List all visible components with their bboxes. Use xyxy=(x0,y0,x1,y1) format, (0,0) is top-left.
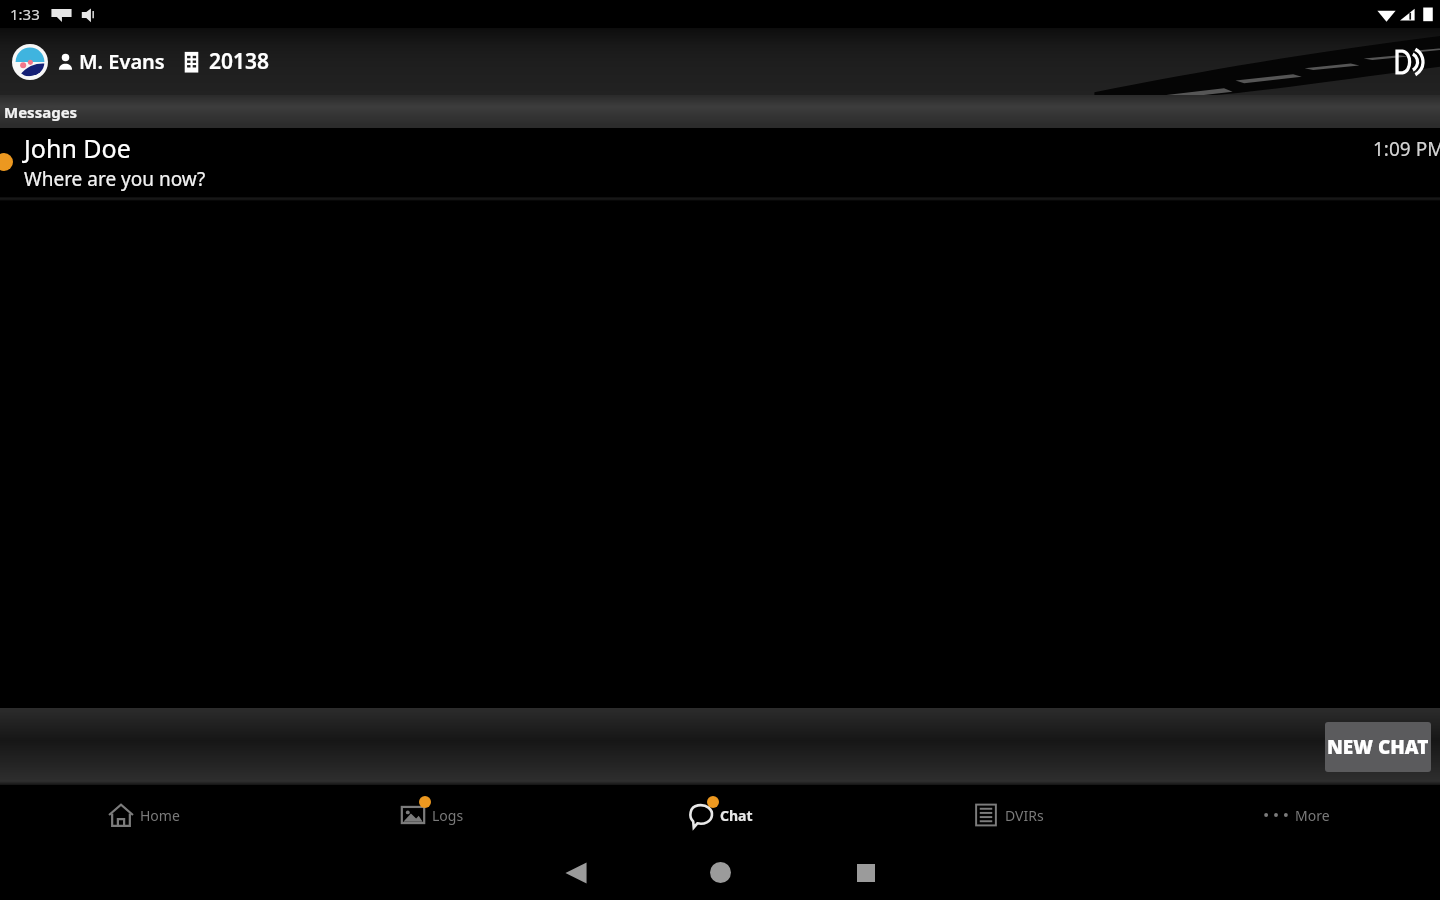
staticText: NEW CHAT xyxy=(1327,734,1429,760)
staticText: DVIRs xyxy=(1005,806,1044,825)
staticText: Chat xyxy=(720,806,753,825)
staticText: Where are you now? xyxy=(24,166,206,192)
staticText: Logs xyxy=(432,806,464,825)
staticText: 1:09 PM xyxy=(1373,136,1440,162)
button[interactable]: M. Evans xyxy=(0,28,282,95)
staticText: 1:33 xyxy=(10,4,40,24)
staticText: Home xyxy=(140,806,180,825)
button[interactable]: Broadcast xyxy=(1390,40,1434,84)
button[interactable]: John Doe xyxy=(0,128,1440,201)
button[interactable]: Home xyxy=(648,845,793,900)
button[interactable]: Logs xyxy=(288,785,576,845)
staticText: Messages xyxy=(4,102,78,122)
staticText: More xyxy=(1295,806,1330,825)
button[interactable]: Messages xyxy=(0,95,1440,128)
button[interactable]: Chat xyxy=(576,785,864,845)
button[interactable]: DVIRs xyxy=(864,785,1152,845)
button[interactable]: Recent apps xyxy=(793,845,938,900)
staticText: M. Evans xyxy=(79,48,165,75)
staticText: John Doe xyxy=(24,131,131,165)
button[interactable]: NEW CHAT xyxy=(1325,722,1431,772)
button[interactable]: More xyxy=(1152,785,1440,845)
staticText: 20138 xyxy=(209,47,270,76)
button[interactable]: Back xyxy=(503,845,648,900)
button[interactable]: Home xyxy=(0,785,288,845)
